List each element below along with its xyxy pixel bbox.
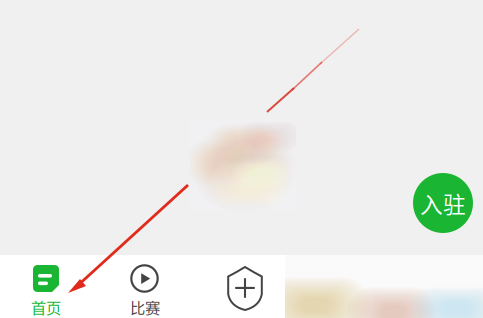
button[interactable]: 比赛: [99, 255, 191, 318]
button[interactable]: 入驻: [413, 173, 473, 233]
staticText: 首页: [31, 296, 61, 318]
staticText: 比赛: [130, 296, 160, 318]
staticText: 入驻: [420, 187, 466, 219]
button[interactable]: 首页: [0, 255, 92, 318]
button[interactable]: 发布: [207, 255, 283, 318]
